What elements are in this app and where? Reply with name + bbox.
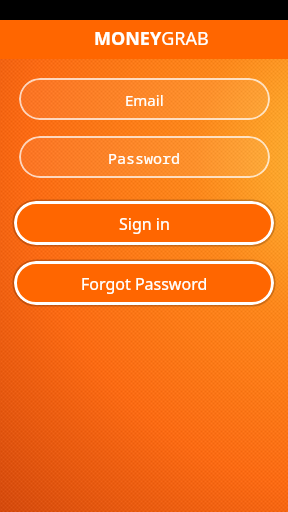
button[interactable]: Sign in	[14, 201, 274, 245]
staticText: Email	[125, 90, 164, 110]
staticText: MONEYGRAB	[94, 26, 209, 51]
staticText: Forgot Password	[81, 273, 208, 295]
button[interactable]: Password	[19, 136, 270, 178]
staticText: Sign in	[119, 213, 170, 235]
staticText: Password	[108, 148, 181, 168]
button[interactable]: Email	[19, 78, 270, 120]
button[interactable]: Forgot Password	[14, 261, 274, 305]
